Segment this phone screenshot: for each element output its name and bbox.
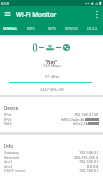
button[interactable]: Gateway	[0, 150, 103, 155]
button[interactable]: More options	[90, 6, 103, 22]
button[interactable]: GENERAL	[0, 22, 20, 35]
staticText: 192.168.0.1	[79, 150, 99, 155]
staticText: DHCP server	[4, 168, 26, 173]
staticText: 8.8.8.8	[87, 164, 99, 169]
button[interactable]: DEVICES	[62, 22, 81, 35]
button[interactable]: CH 2.4	[81, 22, 102, 35]
staticText: Device	[4, 105, 19, 111]
staticText: IPv4	[4, 112, 12, 117]
staticText: 255.255.255.0	[74, 155, 99, 160]
button[interactable]: NETS	[42, 22, 62, 35]
button[interactable]: IPv4	[0, 112, 103, 117]
staticText: "Net"	[45, 59, 58, 65]
button[interactable]: IPv6	[0, 117, 103, 122]
staticText: fe80::0a2e:3b	[61, 117, 85, 122]
staticText: 8:58	[1, 1, 9, 6]
staticText: Netmask	[4, 155, 20, 160]
button[interactable]: INFO	[20, 22, 42, 35]
staticText: b0:e2:3b	[73, 121, 88, 126]
staticText: 192.168.0.1	[79, 159, 99, 164]
staticText: 192.168.0.100	[74, 112, 99, 117]
staticText: DEVICES	[65, 27, 78, 31]
staticText: 144 Mbps	[43, 63, 61, 68]
staticText: CH 2.4	[87, 27, 97, 31]
button[interactable]: DHCP server	[0, 168, 103, 173]
staticText: Wi-Fi Monitor	[16, 10, 57, 19]
staticText: 192.168.0.1	[79, 168, 99, 173]
staticText: dns1	[4, 159, 13, 164]
staticText: NETS	[48, 27, 56, 31]
staticText: MAC	[4, 121, 12, 126]
staticText: Gateway	[4, 150, 19, 155]
staticText: 2467 MHz (8)	[40, 87, 64, 92]
staticText: -91 dBm	[44, 74, 60, 79]
staticText: IPv6	[4, 117, 12, 122]
button[interactable]: Netmask	[0, 155, 103, 160]
button[interactable]: dns1	[0, 159, 103, 164]
staticText: dns2	[4, 164, 13, 169]
staticText: INFO	[27, 27, 35, 31]
staticText: Info	[4, 143, 13, 149]
staticText: GENERAL	[3, 27, 18, 31]
button[interactable]: MAC	[0, 121, 103, 126]
button[interactable]: Open navigation menu	[0, 6, 14, 22]
button[interactable]: dns2	[0, 164, 103, 169]
